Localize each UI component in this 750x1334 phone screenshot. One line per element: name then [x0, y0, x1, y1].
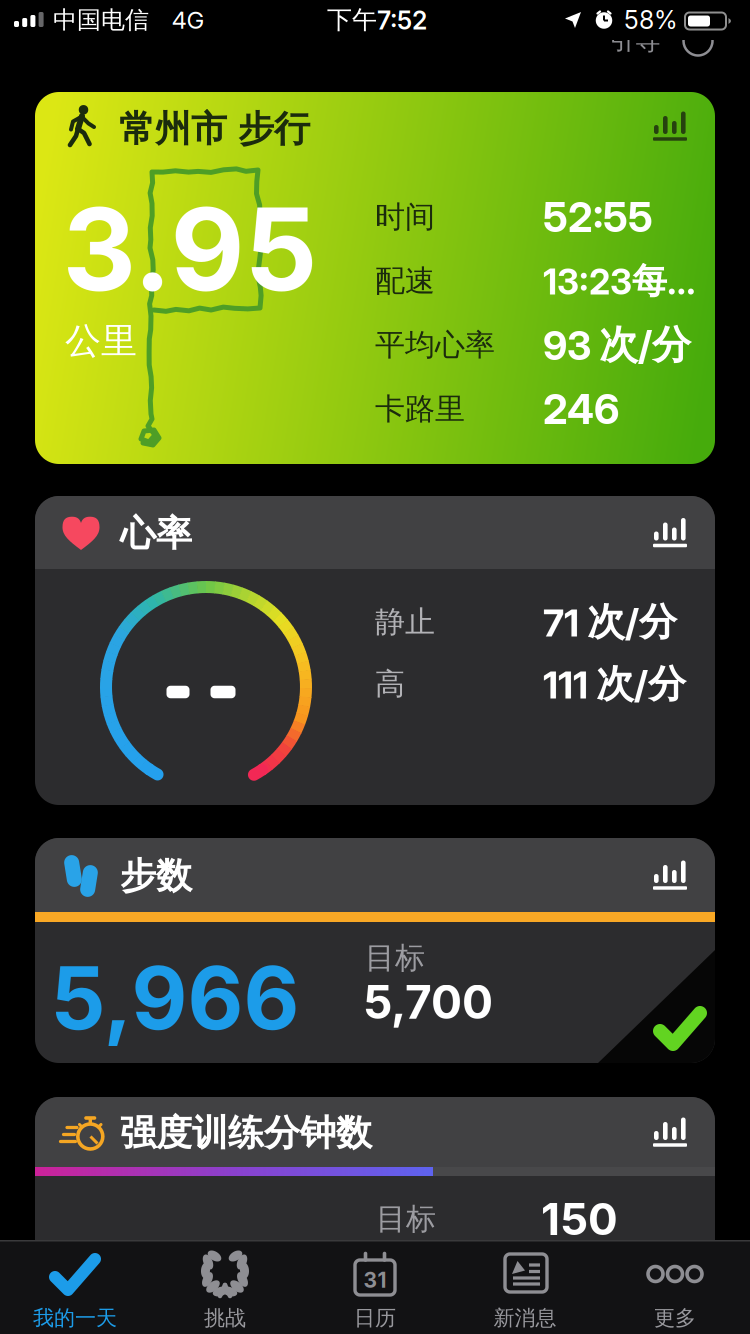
staticText: 111 次/分 — [543, 660, 686, 708]
button[interactable]: 查看统计 — [653, 860, 687, 890]
staticText: 目标 — [365, 939, 425, 977]
staticText: 挑战 — [204, 1305, 246, 1331]
button[interactable]: 常州市 步行 — [35, 92, 715, 464]
staticText: 4G — [171, 5, 204, 34]
button[interactable]: 心率 — [35, 496, 715, 805]
staticText: 5,966 — [50, 946, 299, 1050]
button[interactable]: 31 — [300, 1240, 450, 1334]
staticText: 5,700 — [363, 974, 493, 1030]
staticText: 13:23每… — [543, 259, 696, 303]
button[interactable]: 帮助 — [683, 26, 712, 55]
staticText: 公里 — [65, 318, 137, 364]
staticText: 3.95 — [62, 180, 317, 318]
staticText: 中国电信 — [53, 5, 149, 35]
button[interactable]: 强度训练分钟数 — [35, 1097, 715, 1334]
staticText: 71 次/分 — [543, 598, 677, 646]
staticText: 静止 — [375, 603, 435, 641]
staticText: 引导 — [609, 24, 661, 56]
staticText: 高 — [375, 665, 405, 703]
staticText: 新消息 — [493, 1305, 556, 1331]
staticText: 步数 — [120, 853, 192, 899]
staticText: 52:55 — [543, 192, 653, 242]
button[interactable]: 查看统计 — [653, 1117, 687, 1147]
button[interactable]: 查看统计 — [653, 111, 687, 141]
button[interactable]: 步数 — [35, 838, 715, 1063]
button[interactable]: 更多 — [600, 1240, 750, 1334]
staticText: 58% — [624, 5, 678, 35]
button[interactable]: 查看统计 — [653, 517, 687, 547]
staticText: 平均心率 — [375, 326, 495, 364]
staticText: 强度训练分钟数 — [120, 1110, 372, 1156]
staticText: 150 — [541, 1192, 618, 1246]
staticText: 心率 — [120, 511, 192, 556]
staticText: 246 — [543, 384, 619, 434]
staticText: 时间 — [375, 198, 435, 236]
staticText: 93 次/分 — [543, 320, 691, 369]
staticText: 卡路里 — [375, 390, 465, 428]
staticText: 常州市 步行 — [119, 106, 310, 152]
staticText: 日历 — [354, 1305, 396, 1331]
staticText: 下午7:52 — [327, 4, 427, 36]
staticText: 配速 — [375, 262, 435, 300]
button[interactable]: 新消息 — [450, 1240, 600, 1334]
staticText: 我的一天 — [33, 1305, 117, 1331]
button[interactable]: 挑战 — [150, 1240, 300, 1334]
staticText: 目标 — [376, 1200, 436, 1238]
staticText: 更多 — [654, 1305, 696, 1331]
staticText: 31 — [363, 1267, 386, 1293]
button[interactable]: 我的一天 — [0, 1240, 150, 1334]
